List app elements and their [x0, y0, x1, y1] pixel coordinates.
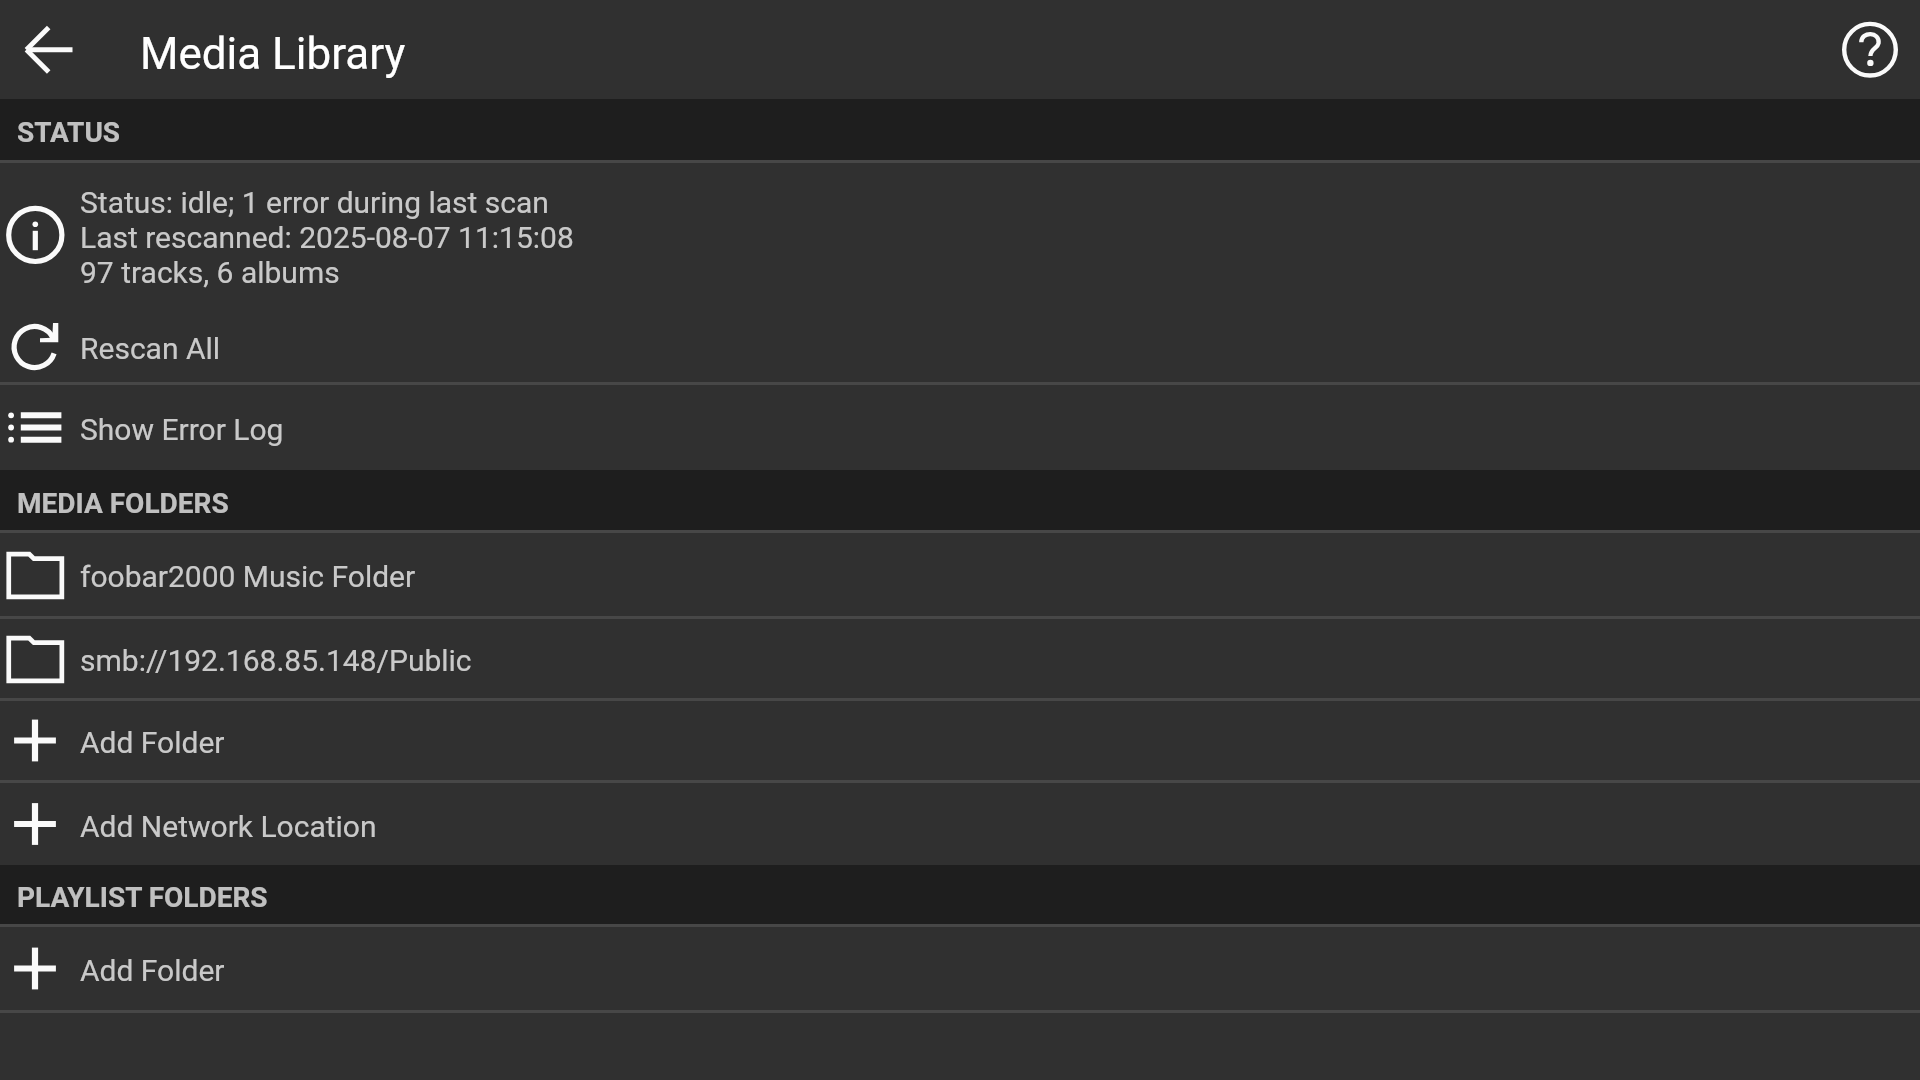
staticText: Add Folder: [80, 953, 225, 988]
button[interactable]: foobar2000 Music Folder: [0, 533, 1920, 616]
button[interactable]: Add Folder: [0, 927, 1920, 1010]
staticText: PLAYLIST FOLDERS: [17, 881, 268, 914]
staticText: Rescan All: [80, 331, 221, 366]
staticText: MEDIA FOLDERS: [17, 487, 229, 520]
button[interactable]: Help: [1821, 0, 1920, 99]
staticText: STATUS: [17, 116, 121, 149]
button[interactable]: Add Network Location: [0, 783, 1920, 865]
staticText: Add Folder: [80, 725, 225, 760]
button[interactable]: Status: idle; 1 error during last scan: [0, 163, 1920, 305]
button[interactable]: smb://192.168.85.148/Public: [0, 619, 1920, 698]
staticText: foobar2000 Music Folder: [80, 559, 416, 594]
staticText: 97 tracks, 6 albums: [80, 255, 340, 290]
staticText: Media Library: [140, 28, 406, 80]
staticText: Status: idle; 1 error during last scan: [80, 185, 549, 220]
staticText: Last rescanned: 2025-08-07 11:15:08: [80, 220, 574, 255]
staticText: smb://192.168.85.148/Public: [80, 643, 472, 678]
staticText: Add Network Location: [80, 809, 377, 844]
button[interactable]: Rescan All: [0, 305, 1920, 382]
staticText: Show Error Log: [80, 412, 284, 447]
button[interactable]: Show Error Log: [0, 385, 1920, 470]
button[interactable]: Add Folder: [0, 701, 1920, 780]
button[interactable]: Back: [0, 0, 99, 99]
